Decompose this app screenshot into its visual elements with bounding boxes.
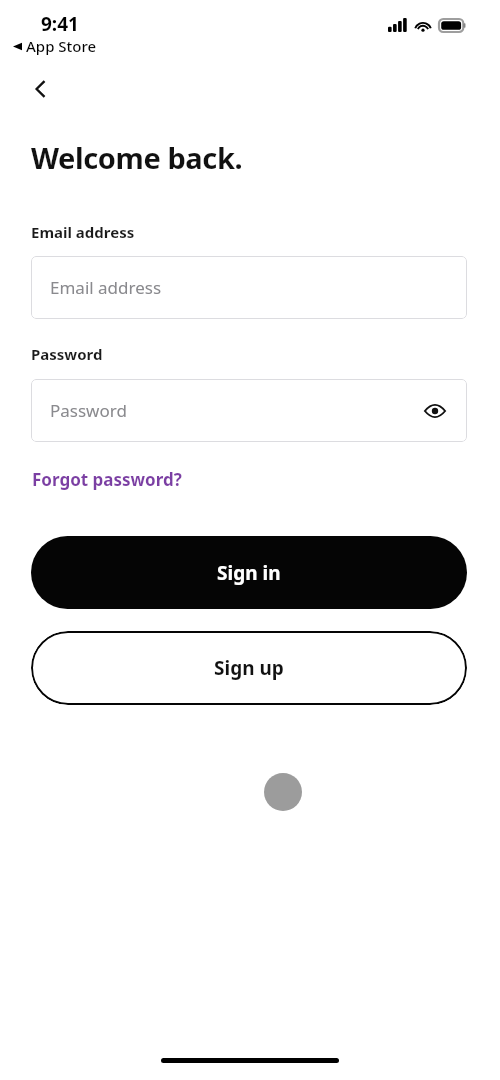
staticText: Password [50,399,127,422]
button[interactable]: Avatar [264,773,302,811]
staticText: Sign in [217,560,281,586]
button[interactable]: Email address [31,256,467,319]
staticText: App Store [26,36,97,56]
button[interactable]: Forgot password? [31,466,183,493]
staticText: Sign up [214,655,284,681]
button[interactable]: App Store [13,36,97,56]
button[interactable]: Back [20,68,62,110]
staticText: Forgot password? [32,468,182,491]
button[interactable]: Sign up [31,631,467,705]
staticText: Email address [31,222,135,242]
button[interactable]: Sign in [31,536,467,609]
staticText: Welcome back. [31,138,243,177]
button[interactable]: Show password [421,397,449,425]
staticText: Password [31,344,103,364]
staticText: Email address [50,276,162,299]
staticText: 9:41 [41,11,79,37]
button[interactable]: Password [31,379,467,442]
